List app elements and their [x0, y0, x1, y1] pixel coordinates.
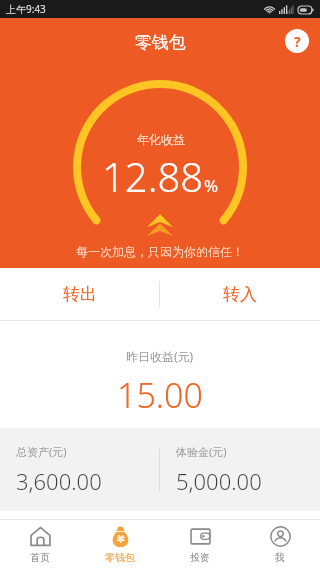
staticText: 首页 [30, 551, 50, 564]
button[interactable]: 投资 [160, 520, 240, 569]
staticText: 上午9:43 [6, 2, 46, 16]
staticText: 转入 [223, 284, 257, 305]
staticText: 总资产(元) [16, 444, 67, 459]
button[interactable]: 帮助 [285, 29, 309, 53]
button[interactable]: 首页 [0, 520, 80, 569]
button[interactable]: 转入 [160, 268, 320, 320]
button[interactable]: 转出 [0, 268, 159, 320]
staticText: 羊 [117, 534, 125, 544]
staticText: 零钱包 [135, 32, 186, 53]
staticText: 体验金(元) [176, 444, 227, 459]
button[interactable]: 总资产(元) [0, 428, 159, 511]
staticText: 15.00 [117, 372, 203, 418]
button[interactable]: 我 [240, 520, 320, 569]
staticText: 零钱包 [105, 551, 135, 564]
staticText: 5,000.00 [176, 466, 262, 496]
button[interactable]: 羊 [80, 520, 160, 569]
staticText: 昨日收益(元) [126, 348, 194, 364]
staticText: ? [294, 32, 301, 51]
staticText: 转出 [63, 284, 97, 305]
staticText: 12.88 [102, 149, 204, 203]
staticText: 3,600.00 [16, 466, 102, 496]
staticText: 投资 [190, 551, 210, 564]
staticText: 年化收益 [137, 132, 185, 147]
staticText: 我 [275, 551, 285, 564]
button[interactable]: 体验金(元) [160, 428, 320, 511]
staticText: % [204, 174, 219, 197]
staticText: 每一次加息，只因为你的信任！ [76, 244, 244, 259]
